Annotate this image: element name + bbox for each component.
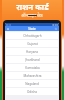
staticText: Chhattisgarh [23,34,42,38]
staticText: Odisha [27,90,37,94]
button[interactable]: Karnataka [6,64,58,71]
staticText: Karnataka [25,66,40,70]
button[interactable]: Search [54,27,58,31]
staticText: Jharkhand [25,58,40,62]
button[interactable]: Odisha [6,88,58,95]
staticText: ऑनलाइन चेक [21,13,43,18]
staticText: State [28,27,36,31]
button[interactable]: Haryana [6,48,58,55]
button[interactable]: Menu [6,27,10,31]
staticText: Haryana [26,50,38,54]
button[interactable]: Nagaland [6,80,58,87]
button[interactable]: Maharashtra [6,72,58,79]
button[interactable]: Gujarat [6,40,58,47]
staticText: Maharashtra [23,74,42,78]
staticText: Gujarat [27,42,38,46]
staticText: राशन कार्ड [16,1,49,12]
button[interactable]: State [28,27,36,31]
staticText: Nagaland [25,82,39,86]
button[interactable]: Jharkhand [6,56,58,63]
button[interactable]: Chhattisgarh [6,32,58,39]
